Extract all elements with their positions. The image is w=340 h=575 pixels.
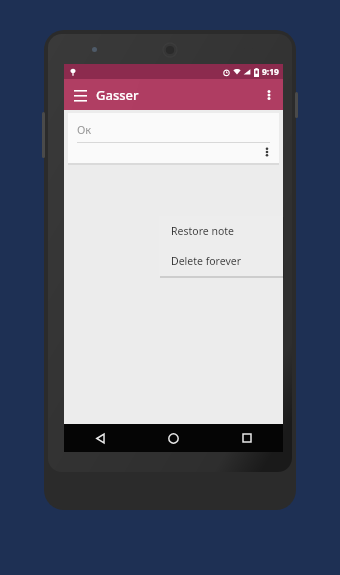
button[interactable]: Ок — [68, 113, 279, 163]
button[interactable]: Note options — [258, 143, 276, 161]
button[interactable]: Restore note — [159, 216, 283, 246]
staticText: Gasser — [96, 86, 139, 104]
button[interactable]: More options — [259, 85, 279, 105]
staticText: Delete forever — [171, 254, 242, 268]
staticText: 9:19 — [262, 66, 279, 78]
staticText: Restore note — [171, 224, 234, 238]
staticText: Ок — [77, 122, 92, 137]
button[interactable]: Back — [64, 424, 137, 452]
button[interactable]: Delete forever — [159, 246, 283, 276]
button[interactable]: Home — [137, 424, 210, 452]
button[interactable]: Open navigation drawer — [70, 85, 90, 105]
button[interactable]: Recent apps — [210, 424, 283, 452]
